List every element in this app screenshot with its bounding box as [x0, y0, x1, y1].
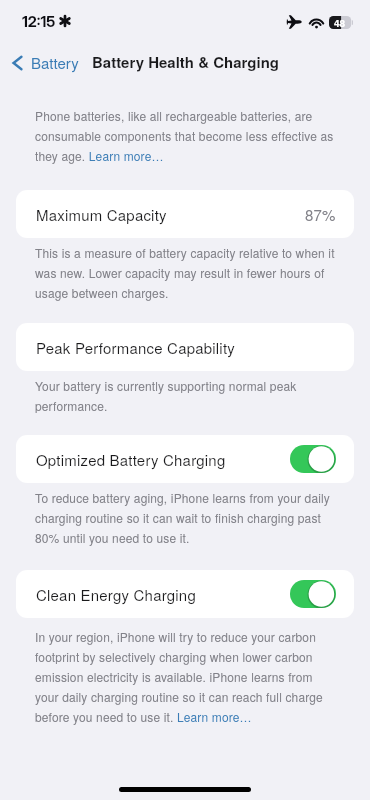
- button[interactable]: Optimized Battery Charging: [16, 435, 354, 483]
- staticText: Optimized Battery Charging: [36, 449, 226, 470]
- staticText: To reduce battery aging, iPhone learns f…: [35, 487, 335, 547]
- other: Back: [12, 54, 23, 72]
- staticText: Peak Performance Capability: [36, 337, 235, 358]
- button[interactable]: Back: [12, 52, 79, 73]
- button[interactable]: Maximum Capacity: [16, 190, 354, 238]
- button[interactable]: Toggle: [290, 445, 336, 473]
- staticText: Clean Energy Charging: [36, 584, 196, 605]
- staticText: 87%: [305, 204, 336, 225]
- staticText: This is a measure of battery capacity re…: [35, 242, 335, 302]
- staticText: 12:15: [22, 12, 56, 30]
- staticText: Maximum Capacity: [36, 204, 167, 225]
- staticText: Battery Health & Charging: [92, 51, 279, 72]
- button[interactable]: Peak Performance Capability: [16, 323, 354, 371]
- staticText: Battery: [31, 52, 79, 73]
- staticText: Your battery is currently supporting nor…: [35, 375, 335, 415]
- staticText: Phone batteries, like all rechargeable b…: [35, 105, 335, 165]
- button[interactable]: Clean Energy Charging: [16, 570, 354, 618]
- staticText: 48: [334, 16, 346, 29]
- button[interactable]: Toggle: [290, 580, 336, 608]
- staticText: In your region, iPhone will try to reduc…: [35, 626, 335, 726]
